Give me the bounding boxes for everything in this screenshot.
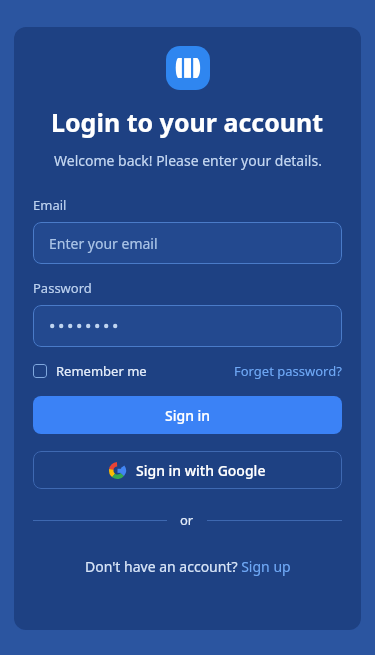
staticText: Login to your account (51, 105, 324, 139)
staticText: Enter your email (49, 234, 158, 253)
staticText: Remember me (56, 362, 147, 380)
staticText: Don't have an account? Sign up (85, 557, 291, 576)
staticText: Forget password? (234, 362, 342, 380)
button[interactable] (33, 305, 342, 347)
staticText: Welcome back! Please enter your details. (54, 151, 322, 170)
button[interactable]: Don't have an account? Sign up (85, 555, 291, 578)
staticText: Sign in with Google (136, 461, 266, 480)
staticText: Password (33, 279, 92, 297)
staticText: or (180, 511, 194, 529)
button[interactable]: Remember me (33, 360, 147, 382)
button[interactable]: Sign in (33, 396, 342, 434)
button[interactable]: Enter your email (33, 222, 342, 264)
staticText: Email (33, 196, 67, 214)
staticText: Sign in (165, 406, 211, 425)
button[interactable]: Forget password? (234, 360, 342, 382)
other: App logo (166, 46, 210, 90)
button[interactable]: Sign in with Google (33, 451, 342, 489)
